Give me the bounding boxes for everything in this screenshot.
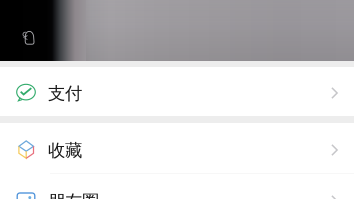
button[interactable]: 朋友圈: [0, 174, 354, 199]
button[interactable]: 收藏: [0, 123, 354, 174]
staticText: 收藏: [48, 140, 82, 161]
staticText: 支付: [48, 83, 82, 104]
button[interactable]: 支付: [0, 67, 354, 116]
staticText: 朋友圈: [48, 191, 99, 199]
